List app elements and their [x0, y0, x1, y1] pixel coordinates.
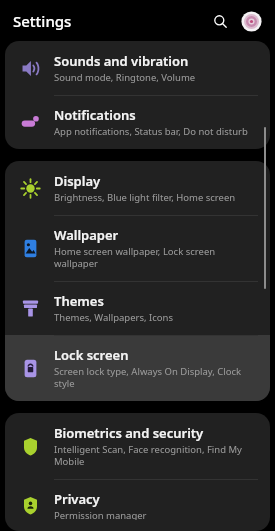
button[interactable]: Account [237, 7, 265, 35]
staticText: Settings [13, 11, 72, 31]
staticText: Home screen wallpaper, Lock screen wallp… [54, 245, 256, 270]
staticText: Intelligent Scan, Face recognition, Find… [54, 443, 256, 468]
staticText: Permission manager [54, 509, 147, 520]
staticText: Sounds and vibration [54, 52, 189, 70]
staticText: Sound mode, Ringtone, Volume [54, 71, 196, 84]
staticText: Notifications [54, 106, 136, 124]
button[interactable]: Wallpaper [5, 215, 270, 281]
button[interactable]: Privacy [5, 479, 270, 531]
staticText: Screen lock type, Always On Display, Clo… [54, 365, 256, 390]
button[interactable]: Notifications [5, 95, 270, 149]
staticText: Lock screen [54, 346, 129, 364]
staticText: Themes, Wallpapers, Icons [54, 311, 174, 324]
button[interactable]: Lock screen [5, 335, 270, 401]
staticText: Privacy [54, 490, 100, 508]
staticText: Wallpaper [54, 226, 119, 244]
staticText: Brightness, Blue light filter, Home scre… [54, 191, 236, 204]
staticText: Biometrics and security [54, 424, 204, 442]
button[interactable]: Search [206, 7, 234, 35]
button[interactable]: Themes [5, 281, 270, 335]
button[interactable]: Sounds and vibration [5, 41, 270, 95]
staticText: Display [54, 172, 101, 190]
button[interactable]: Display [5, 161, 270, 215]
staticText: Themes [54, 292, 104, 310]
staticText: App notifications, Status bar, Do not di… [54, 125, 248, 138]
button[interactable]: Biometrics and security [5, 413, 270, 479]
